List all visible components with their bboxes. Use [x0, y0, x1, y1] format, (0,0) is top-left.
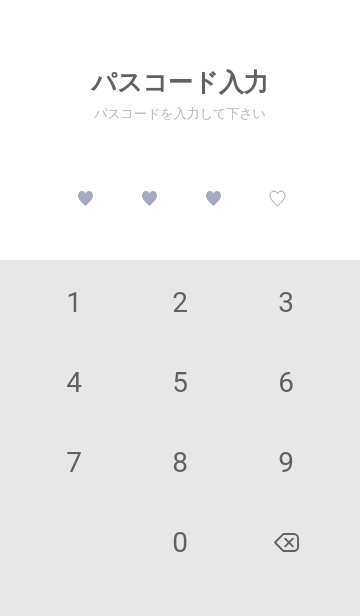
staticText: 2	[172, 286, 188, 319]
button[interactable]: 2	[127, 262, 233, 342]
staticText: 6	[278, 366, 294, 399]
staticText: パスコード入力	[91, 67, 269, 98]
staticText: 1	[66, 286, 82, 319]
staticText: 8	[172, 446, 188, 479]
button[interactable]: 5	[127, 342, 233, 422]
button[interactable]: Backspace	[233, 502, 339, 582]
button[interactable]: 4	[21, 342, 127, 422]
button[interactable]: 6	[233, 342, 339, 422]
button[interactable]: 9	[233, 422, 339, 502]
staticText: パスコードを入力して下さい	[94, 105, 266, 121]
staticText: 4	[66, 366, 82, 399]
button[interactable]: 8	[127, 422, 233, 502]
button[interactable]: 3	[233, 262, 339, 342]
staticText: 9	[278, 446, 294, 479]
staticText: 3	[278, 286, 294, 319]
button[interactable]: 1	[21, 262, 127, 342]
button[interactable]: 7	[21, 422, 127, 502]
button[interactable]: 0	[127, 502, 233, 582]
staticText: 5	[172, 366, 188, 399]
staticText: 7	[66, 446, 82, 479]
staticText: 0	[172, 526, 188, 559]
